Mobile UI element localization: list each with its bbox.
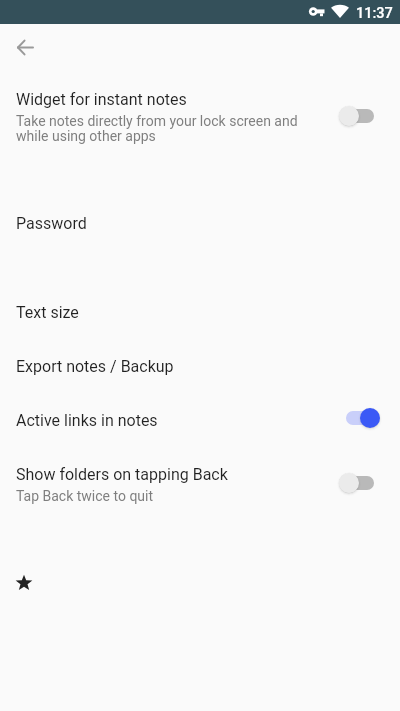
button[interactable]: Password	[0, 201, 400, 255]
button[interactable]: Widget for instant notes	[339, 104, 379, 128]
button[interactable]: Active links in notes	[341, 406, 381, 430]
staticText: Show folders on tapping Back	[16, 465, 228, 484]
staticText: Take notes directly from your lock scree…	[16, 113, 308, 144]
button[interactable]: Favourites	[8, 566, 40, 598]
button[interactable]: Navigate up	[1, 24, 49, 72]
staticText: Widget for instant notes	[16, 90, 187, 109]
button[interactable]: Export notes / Backup	[0, 344, 400, 398]
staticText: Active links in notes	[16, 411, 158, 430]
button[interactable]: Widget for instant notes	[0, 78, 400, 156]
staticText: Tap Back twice to quit	[16, 488, 154, 504]
staticText: Text size	[16, 303, 79, 322]
staticText: Password	[16, 214, 87, 233]
staticText: 11:37	[356, 5, 393, 22]
button[interactable]: Show folders on tapping Back	[339, 471, 379, 495]
other: VPN active	[306, 4, 326, 20]
button[interactable]: Active links in notes	[0, 398, 400, 452]
staticText: Export notes / Backup	[16, 357, 174, 376]
other: Wi-Fi	[331, 5, 349, 18]
button[interactable]: Text size	[0, 290, 400, 344]
button[interactable]: Show folders on tapping Back	[0, 452, 400, 514]
